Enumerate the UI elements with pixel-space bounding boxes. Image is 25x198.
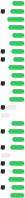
button[interactable]: Message — [1, 169, 24, 174]
button[interactable]: Message — [1, 89, 24, 94]
button[interactable]: Message — [1, 145, 24, 150]
button[interactable]: Message — [1, 97, 24, 102]
button[interactable]: Message — [1, 137, 24, 142]
button[interactable]: Message — [1, 1, 24, 6]
button[interactable]: Message — [1, 65, 24, 70]
button[interactable]: Message — [1, 161, 24, 166]
button[interactable]: Message — [1, 57, 24, 62]
button[interactable]: Message — [1, 17, 24, 22]
button[interactable]: Message — [1, 193, 24, 198]
button[interactable]: Message — [1, 121, 24, 126]
button[interactable]: Message — [1, 129, 24, 134]
button[interactable]: Message — [1, 81, 24, 86]
button[interactable]: Message — [1, 153, 24, 158]
button[interactable]: Message — [1, 41, 24, 46]
button[interactable]: Message — [1, 73, 24, 78]
button[interactable]: Message — [1, 185, 24, 190]
button[interactable]: Message — [1, 33, 24, 38]
button[interactable]: Message — [1, 105, 24, 110]
button[interactable]: Message — [1, 25, 24, 30]
button[interactable]: Message — [1, 49, 24, 54]
button[interactable]: Message — [1, 177, 24, 182]
button[interactable]: Message — [1, 113, 24, 118]
button[interactable]: Message — [1, 9, 24, 14]
